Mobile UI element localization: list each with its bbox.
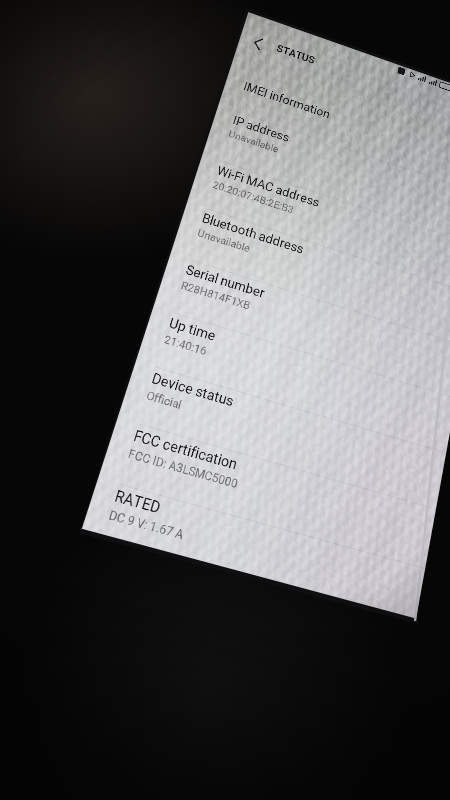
button[interactable]: Photo of phone Status screen [0,0,450,800]
